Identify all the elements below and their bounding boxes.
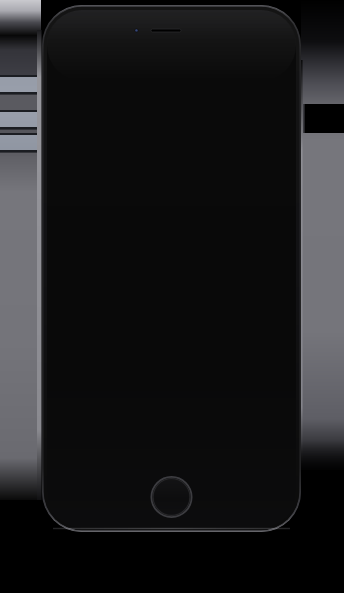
button[interactable]: iPhone device mockup <box>0 0 344 593</box>
